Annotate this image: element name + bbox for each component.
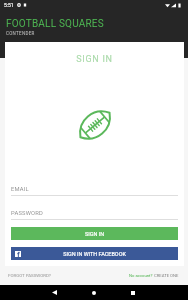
staticText: 5:51 (4, 2, 14, 8)
button[interactable]: Home (84, 285, 104, 300)
staticText: SIGN IN WITH FACEBOOK (24, 251, 165, 257)
staticText: PASSWORD (11, 210, 44, 217)
staticText: EMAIL (11, 186, 29, 193)
button[interactable]: PASSWORD (11, 210, 178, 220)
staticText: SIGN IN (85, 231, 105, 237)
button[interactable]: SIGN IN (11, 227, 178, 240)
staticText: CONTENDER (6, 31, 35, 36)
staticText: CREATE ONE (154, 273, 179, 278)
button[interactable]: No account? (129, 273, 179, 278)
button[interactable]: FORGOT PASSWORD? (8, 273, 51, 278)
staticText: SIGN IN (5, 54, 184, 65)
button[interactable]: Recent apps (123, 285, 143, 300)
button[interactable]: Back (44, 285, 64, 300)
button[interactable]: SIGN IN WITH FACEBOOK (11, 247, 178, 260)
staticText: No account? (129, 273, 154, 278)
staticText: FOOTBALL SQUARES (6, 18, 104, 30)
button[interactable]: EMAIL (11, 186, 178, 196)
